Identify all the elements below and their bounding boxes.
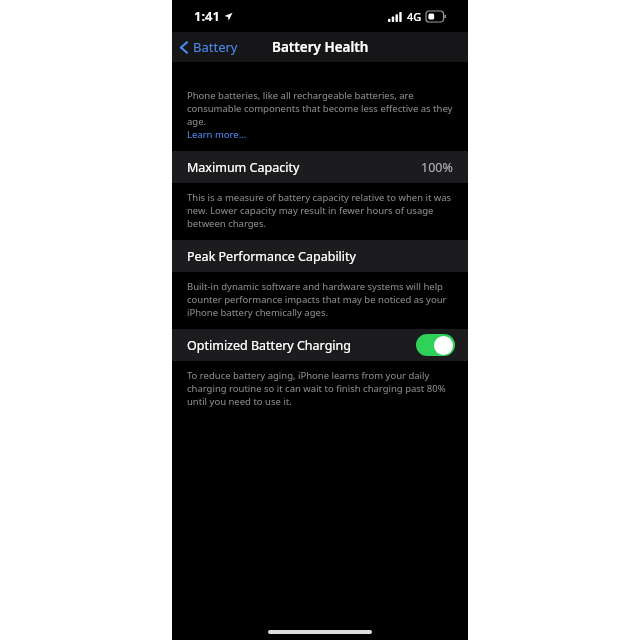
staticText: Battery Health [272,38,369,56]
button[interactable]: Optimized Battery Charging toggle, on [416,334,455,356]
staticText: Maximum Capacity [187,159,300,176]
staticText: 4G [407,9,422,24]
staticText: Phone batteries, like all rechargeable b… [187,89,453,128]
staticText: 1:41 [194,7,220,25]
staticText: This is a measure of battery capacity re… [187,191,453,230]
button[interactable]: Peak Performance Capability [172,240,468,272]
staticText: 100% [421,159,453,176]
staticText: Built-in dynamic software and hardware s… [187,280,453,319]
button[interactable]: Maximum Capacity [172,151,468,183]
button[interactable]: Optimized Battery Charging [172,329,468,361]
staticText: Optimized Battery Charging [187,337,351,354]
staticText: Battery [193,38,238,56]
staticText: Peak Performance Capability [187,248,356,265]
button[interactable]: Battery [172,34,246,60]
staticText: Learn more... [187,128,247,141]
button[interactable]: Learn more... [187,128,247,141]
staticText: To reduce battery aging, iPhone learns f… [187,369,453,408]
